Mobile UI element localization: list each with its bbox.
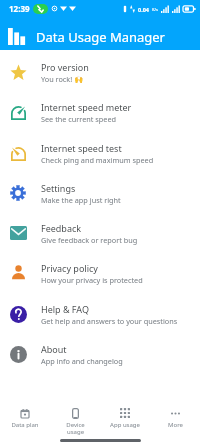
staticText: How your privacy is protected <box>41 275 143 285</box>
button[interactable]: Privacy policy <box>0 253 200 293</box>
staticText: Pro version <box>41 61 89 73</box>
button[interactable]: Device usage <box>50 398 100 436</box>
button[interactable]: App usage <box>100 398 150 436</box>
staticText: About <box>41 343 67 355</box>
button[interactable]: About <box>0 334 200 374</box>
button[interactable]: Internet speed test <box>0 133 200 173</box>
staticText: K/s <box>152 7 158 12</box>
staticText: Data plan <box>11 421 39 429</box>
staticText: 12:39 <box>9 3 30 14</box>
staticText: Get help and answers to your questions <box>41 316 178 326</box>
button[interactable]: Data plan <box>0 398 50 436</box>
staticText: More <box>168 421 183 429</box>
button[interactable]: Internet speed meter <box>0 92 200 132</box>
staticText: Give feedback or report bug <box>41 235 138 245</box>
staticText: Make the app just right <box>41 195 121 205</box>
button[interactable]: Help & FAQ <box>0 294 200 334</box>
button[interactable]: Pro version <box>0 52 200 92</box>
staticText: 0.04 <box>138 6 149 13</box>
staticText: Data Usage Manager <box>36 28 165 46</box>
staticText: You rock! 🙌 <box>41 74 84 84</box>
staticText: App usage <box>110 421 140 429</box>
button[interactable]: More <box>150 398 200 436</box>
button[interactable]: Feedback <box>0 213 200 253</box>
staticText: See the current speed <box>41 114 117 124</box>
staticText: App info and changelog <box>41 356 123 366</box>
staticText: Check ping and maximum speed <box>41 155 154 165</box>
staticText: Internet speed test <box>41 142 122 154</box>
staticText: Help & FAQ <box>41 303 89 315</box>
staticText: Feedback <box>41 222 82 234</box>
staticText: Internet speed meter <box>41 101 132 113</box>
staticText: Device usage <box>66 421 85 436</box>
staticText: Privacy policy <box>41 262 98 274</box>
button[interactable]: Settings <box>0 173 200 213</box>
staticText: Settings <box>41 182 76 194</box>
